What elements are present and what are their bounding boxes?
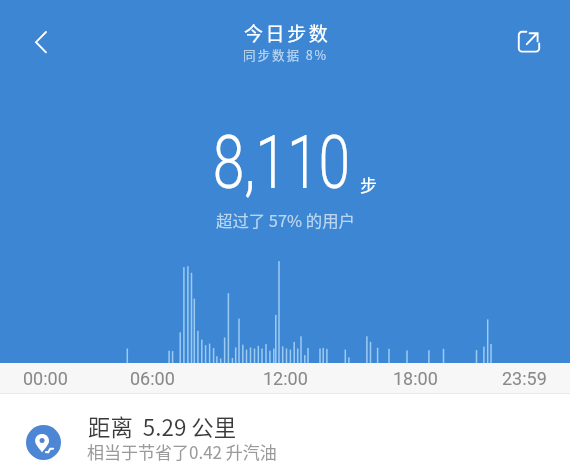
staticText: 00:00	[23, 368, 68, 389]
staticText: 18:00	[393, 368, 438, 389]
staticText: 8,110	[213, 118, 350, 206]
button[interactable]: Back	[18, 19, 64, 65]
staticText: 相当于节省了0.42 升汽油	[87, 439, 277, 464]
button[interactable]: Share	[506, 19, 552, 65]
staticText: 23:59	[502, 368, 547, 389]
staticText: 步	[360, 172, 377, 197]
staticText: 今日步数	[244, 19, 331, 47]
staticText: 超过了 57% 的用户	[216, 208, 355, 232]
staticText: 距离 5.29 公里	[88, 410, 237, 442]
staticText: 12:00	[263, 368, 308, 389]
staticText: 同步数据 8%	[243, 45, 329, 63]
staticText: 06:00	[130, 368, 175, 389]
button[interactable]: 距离 5.29 公里	[0, 394, 570, 475]
